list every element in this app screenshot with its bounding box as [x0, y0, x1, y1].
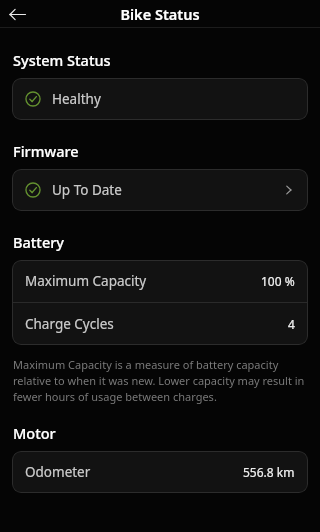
staticText: Odometer [25, 463, 91, 481]
button[interactable]: Back [0, 0, 34, 28]
staticText: System Status [13, 50, 111, 70]
staticText: 4 [288, 316, 295, 332]
staticText: 100 % [261, 273, 295, 289]
staticText: Maximum Capacity is a measure of battery… [13, 357, 307, 404]
staticText: Battery [13, 232, 64, 252]
staticText: Maximum Capacity [25, 272, 147, 290]
button[interactable]: Odometer [12, 451, 308, 493]
other: Open firmware details [281, 182, 297, 198]
staticText: Healthy [52, 90, 101, 108]
staticText: Up To Date [52, 181, 122, 199]
button[interactable]: Charge Cycles [12, 303, 308, 345]
staticText: 556.8 km [243, 464, 295, 480]
button[interactable]: Healthy [12, 78, 308, 120]
staticText: Bike Status [120, 4, 200, 24]
button[interactable]: Up To Date [12, 169, 308, 211]
staticText: Firmware [13, 141, 79, 161]
staticText: Motor [13, 423, 56, 443]
button[interactable]: Maximum Capacity [12, 260, 308, 302]
staticText: Charge Cycles [25, 315, 114, 333]
